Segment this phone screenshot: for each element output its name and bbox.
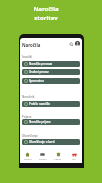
staticText: Naročila (22, 42, 41, 48)
staticText: Prijave (22, 115, 32, 119)
staticText: Domov (24, 158, 32, 161)
button[interactable]: Osebni prevoz (22, 69, 80, 75)
staticText: Naročilo prijave (29, 120, 51, 124)
staticText: storitev (34, 14, 58, 22)
button[interactable]: Spremstvo (22, 78, 80, 84)
button[interactable]: Nakup (50, 150, 66, 163)
button[interactable]: Preklic naročila (22, 101, 80, 107)
staticText: Naročilo prevoza (29, 62, 53, 66)
staticText: Kartica (39, 158, 47, 161)
staticText: Invalidi (22, 55, 33, 59)
button[interactable]: Naročilo prevoza (22, 61, 80, 67)
button[interactable]: Več (66, 150, 82, 163)
button[interactable]: Naročilo prijave (22, 119, 80, 125)
staticText: Naročila (33, 5, 59, 13)
staticText: Osebni prevoz (29, 70, 49, 74)
button[interactable]: Search (69, 42, 74, 47)
staticText: Preklic naročila (29, 102, 50, 106)
button[interactable]: Kartica (35, 150, 50, 163)
staticText: Spremstvo (29, 79, 44, 83)
staticText: Obveščanje o karti (29, 140, 55, 144)
staticText: Več (72, 158, 76, 161)
button[interactable]: Domov (20, 150, 35, 163)
staticText: Obveščanje (22, 134, 38, 138)
staticText: Nakup (54, 158, 62, 161)
staticText: Naročnik (22, 95, 35, 99)
button[interactable]: Profile (75, 41, 80, 46)
button[interactable]: Obveščanje o karti (22, 139, 80, 145)
